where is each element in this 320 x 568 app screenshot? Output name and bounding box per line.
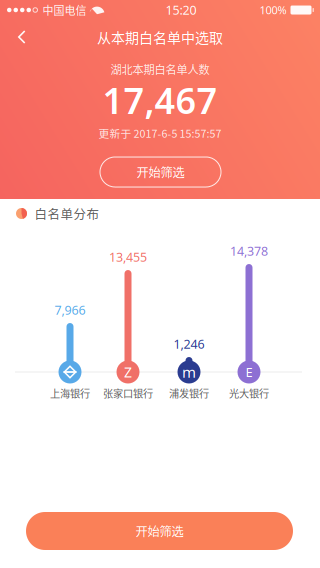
staticText: 100% — [259, 2, 286, 17]
staticText: m — [182, 362, 196, 382]
staticText: 15:20 — [165, 1, 196, 18]
staticText: 7,966 — [54, 301, 85, 318]
staticText: 从本期白名单中选取 — [97, 27, 223, 47]
staticText: E — [245, 363, 252, 381]
button[interactable]: 开始筛选 — [26, 512, 293, 550]
staticText: 张家口银行 — [103, 386, 153, 400]
staticText: 更新于 2017-6-5 15:57:57 — [98, 125, 221, 141]
staticText: 浦发银行 — [169, 386, 209, 400]
staticText: 13,455 — [109, 248, 147, 265]
staticText: 开始筛选 — [136, 163, 184, 181]
staticText: 光大银行 — [229, 386, 269, 400]
staticText: 开始筛选 — [135, 522, 183, 540]
staticText: 湖北本期白名单人数 — [110, 61, 209, 77]
staticText: 17,467 — [102, 76, 217, 124]
button[interactable]: 返回 — [0, 21, 44, 53]
staticText: 白名单分布 — [34, 204, 99, 223]
staticText: 中国电信 — [42, 2, 86, 18]
button[interactable]: 开始筛选 — [100, 157, 221, 187]
staticText: 1,246 — [173, 335, 204, 352]
staticText: Z — [124, 362, 132, 382]
staticText: 14,378 — [230, 242, 268, 259]
staticText: 上海银行 — [50, 386, 90, 400]
